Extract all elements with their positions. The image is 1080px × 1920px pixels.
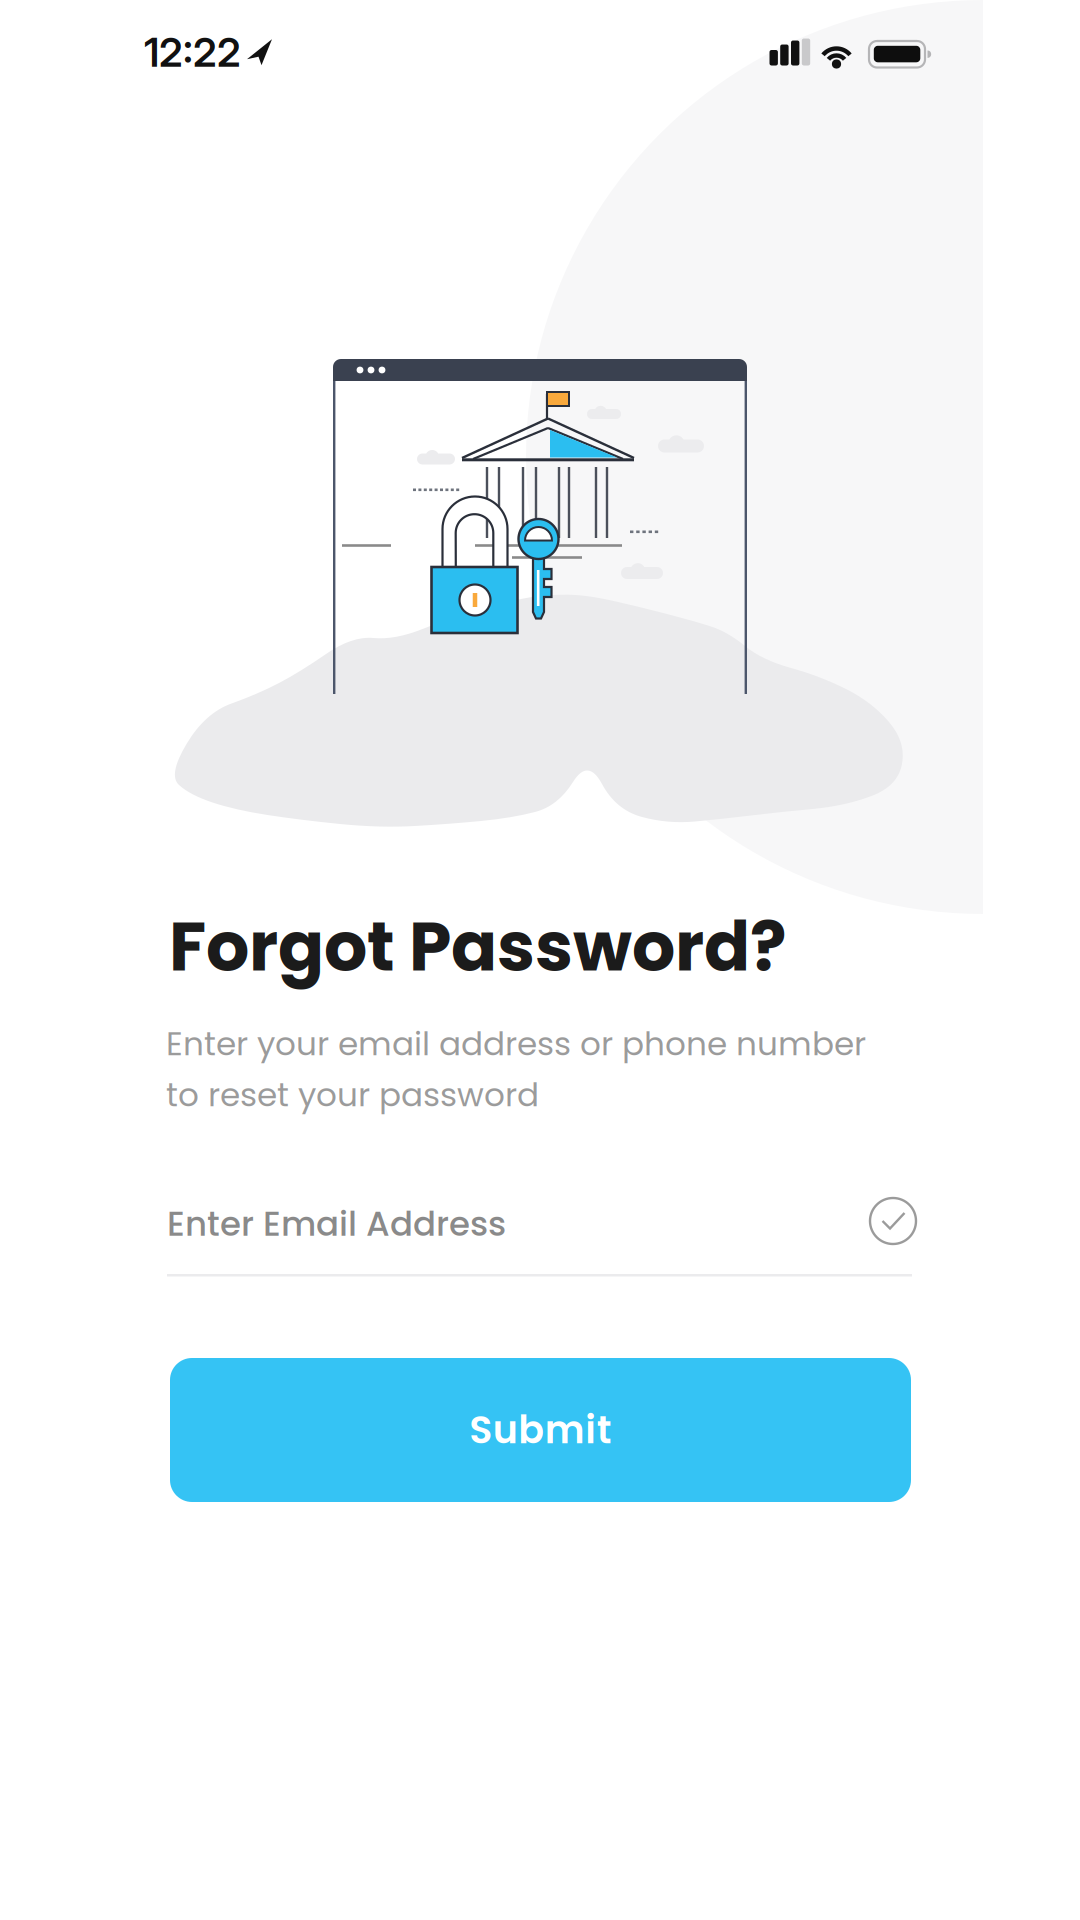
staticText: Enter Email Address — [167, 1200, 506, 1248]
button[interactable]: Submit — [170, 1358, 911, 1502]
button[interactable]: Enter Email Address — [167, 1200, 912, 1278]
staticText: Forgot Password? — [169, 899, 787, 994]
staticText: Submit — [469, 1403, 612, 1457]
staticText: Enter your email address or phone number — [166, 1021, 866, 1067]
staticText: 12:22 — [144, 28, 241, 76]
staticText: to reset your password — [166, 1072, 539, 1118]
